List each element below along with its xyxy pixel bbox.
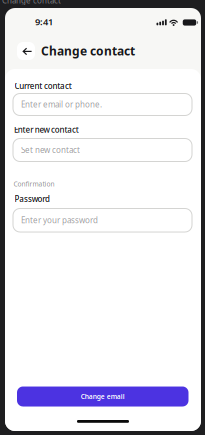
staticText: Change contact	[2, 0, 61, 6]
staticText: Set new contact	[21, 145, 80, 155]
staticText: Change email	[81, 392, 125, 401]
staticText: Enter your password	[21, 215, 98, 225]
staticText: Current contact	[14, 80, 72, 91]
button[interactable]: Enter your password	[13, 208, 192, 232]
staticText: Confirmation	[13, 179, 54, 188]
button[interactable]	[17, 42, 35, 60]
staticText: Password	[14, 194, 50, 204]
staticText: Enter new contact	[14, 124, 79, 135]
button[interactable]: Set new contact	[13, 138, 192, 161]
staticText: Change contact	[41, 43, 135, 59]
button[interactable]: Enter email or phone.	[13, 93, 192, 115]
staticText: Enter email or phone.	[21, 99, 102, 110]
button[interactable]: Change email	[17, 386, 188, 406]
staticText: 9:41	[35, 15, 53, 28]
